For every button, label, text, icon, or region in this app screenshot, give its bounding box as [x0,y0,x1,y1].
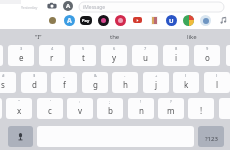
staticText: t [82,52,85,63]
staticText: ! [140,99,142,104]
button[interactable]: + [143,72,169,93]
staticText: ? [170,99,172,104]
button[interactable]: Photos [200,15,211,26]
staticText: 8 [175,46,178,51]
button[interactable]: 8 [163,45,189,66]
button[interactable]: Voice input [8,126,33,147]
staticText: ) [216,73,218,78]
staticText: c [48,105,52,116]
button[interactable]: Translate [166,15,177,26]
staticText: “I” [35,33,42,41]
button[interactable]: & [82,72,108,93]
staticText: $ [33,73,36,78]
button[interactable]: ' [37,98,63,119]
button[interactable]: Music [219,16,227,24]
staticText: # [2,73,5,78]
button[interactable]: Recently used [49,17,56,24]
button[interactable]: 7 [132,45,158,66]
button[interactable]: _ [51,72,77,93]
button[interactable]: Camera [46,0,58,12]
button[interactable]: ! [188,98,214,119]
button[interactable]: ?123 [198,126,224,147]
button[interactable]: Music [115,15,126,26]
staticText: o [205,52,210,63]
staticText: y [112,52,117,63]
staticText: 5 [82,46,85,51]
staticText: + [155,73,158,78]
button[interactable]: Books [151,16,158,25]
staticText: - [124,73,126,78]
button[interactable]: iMessage [79,2,224,12]
button[interactable]: # [0,72,16,93]
staticText: Pay [82,18,90,23]
staticText: the [110,33,120,41]
button[interactable] [219,98,230,119]
button[interactable]: YouTube [133,17,142,23]
staticText: d [32,79,37,90]
button[interactable]: App Store [62,0,74,12]
staticText: 3 [20,46,23,51]
staticText: s [1,79,5,90]
staticText: k [184,79,189,90]
button[interactable]: Digital Touch [98,15,109,26]
button[interactable]: - [112,72,138,93]
button[interactable]: 5 [70,45,96,66]
button[interactable]: 3 [8,45,34,66]
staticText: f [63,79,66,90]
staticText: g [93,79,98,90]
button[interactable]: like [153,29,230,44]
staticText: u [143,52,148,63]
button[interactable]: : [67,98,93,119]
button[interactable]: 2 [0,45,3,66]
button[interactable]: * [0,98,2,119]
button[interactable]: ; [97,98,123,119]
staticText: r [50,52,54,63]
staticText: 6 [113,46,116,51]
staticText: m [167,105,175,116]
staticText: 7 [144,46,147,51]
button[interactable]: App Store [64,15,75,26]
button[interactable]: Apple Pay [80,16,92,25]
staticText: U [169,17,174,25]
staticText: h [123,79,128,90]
button[interactable]: 9 [194,45,220,66]
staticText: Yesterday [21,5,38,10]
button[interactable]: the [76,29,153,44]
button[interactable]: Maps [183,15,194,26]
staticText: b [108,105,113,116]
staticText: 9 [206,46,209,51]
staticText: ?123 [205,135,218,143]
staticText: : [79,99,81,104]
staticText: ' [50,99,51,104]
button[interactable]: “I” [0,29,76,44]
button[interactable]: " [6,98,32,119]
staticText: 4 [51,46,54,51]
button[interactable]: 4 [39,45,65,66]
staticText: ( [185,73,187,78]
staticText: A [66,2,71,10]
button[interactable]: $ [21,72,47,93]
staticText: e [19,52,24,63]
staticText: " [18,99,20,104]
button[interactable]: 6 [101,45,127,66]
staticText: i [175,52,178,63]
button[interactable]: ) [204,72,230,93]
staticText: & [94,73,97,78]
staticText: _ [63,73,65,78]
button[interactable]: ( [173,72,199,93]
staticText: like [187,33,197,41]
button[interactable]: ! [128,98,154,119]
staticText: v [78,105,83,116]
staticText: n [139,105,144,116]
staticText: l [216,79,219,90]
button[interactable]: ? [158,98,184,119]
staticText: A [67,16,72,26]
staticText: iMessage [83,4,106,11]
button[interactable]: 0 [226,45,230,66]
staticText: x [17,105,22,116]
staticText: j [155,79,158,90]
staticText: ; [109,99,111,104]
staticText: ! [200,105,203,116]
